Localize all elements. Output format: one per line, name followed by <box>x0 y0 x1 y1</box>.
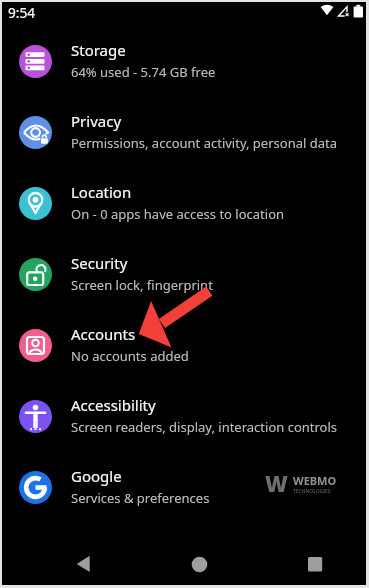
button[interactable]: Location <box>2 168 366 239</box>
staticText: Privacy <box>71 111 122 131</box>
staticText: WEBMO <box>293 473 337 488</box>
staticText: Screen lock, fingerprint <box>71 276 213 294</box>
staticText: Accounts <box>71 324 136 344</box>
button[interactable]: Accessibility <box>2 381 366 452</box>
button[interactable]: Storage <box>2 26 366 97</box>
button[interactable] <box>74 553 93 574</box>
button[interactable]: Google <box>2 452 366 523</box>
staticText: Location <box>71 182 132 202</box>
staticText: Services & preferences <box>71 489 210 507</box>
staticText: On - 0 apps have access to location <box>71 205 285 223</box>
staticText: No accounts added <box>71 347 189 365</box>
button[interactable] <box>307 556 323 572</box>
staticText: Screen readers, display, interaction con… <box>71 418 338 436</box>
staticText: Security <box>71 253 128 273</box>
button[interactable] <box>190 555 209 574</box>
staticText: W <box>265 468 288 498</box>
staticText: Storage <box>71 40 126 60</box>
staticText: 9:54 <box>8 3 36 22</box>
button[interactable]: Accounts <box>2 310 366 381</box>
button[interactable]: Privacy <box>2 97 366 168</box>
button[interactable]: Security <box>2 239 366 310</box>
staticText: TECHNOLOGIES <box>293 488 331 495</box>
staticText: Accessibility <box>71 395 156 415</box>
staticText: Permissions, account activity, personal … <box>71 134 337 152</box>
staticText: Google <box>71 466 122 486</box>
staticText: 64% used - 5.74 GB free <box>71 63 216 81</box>
